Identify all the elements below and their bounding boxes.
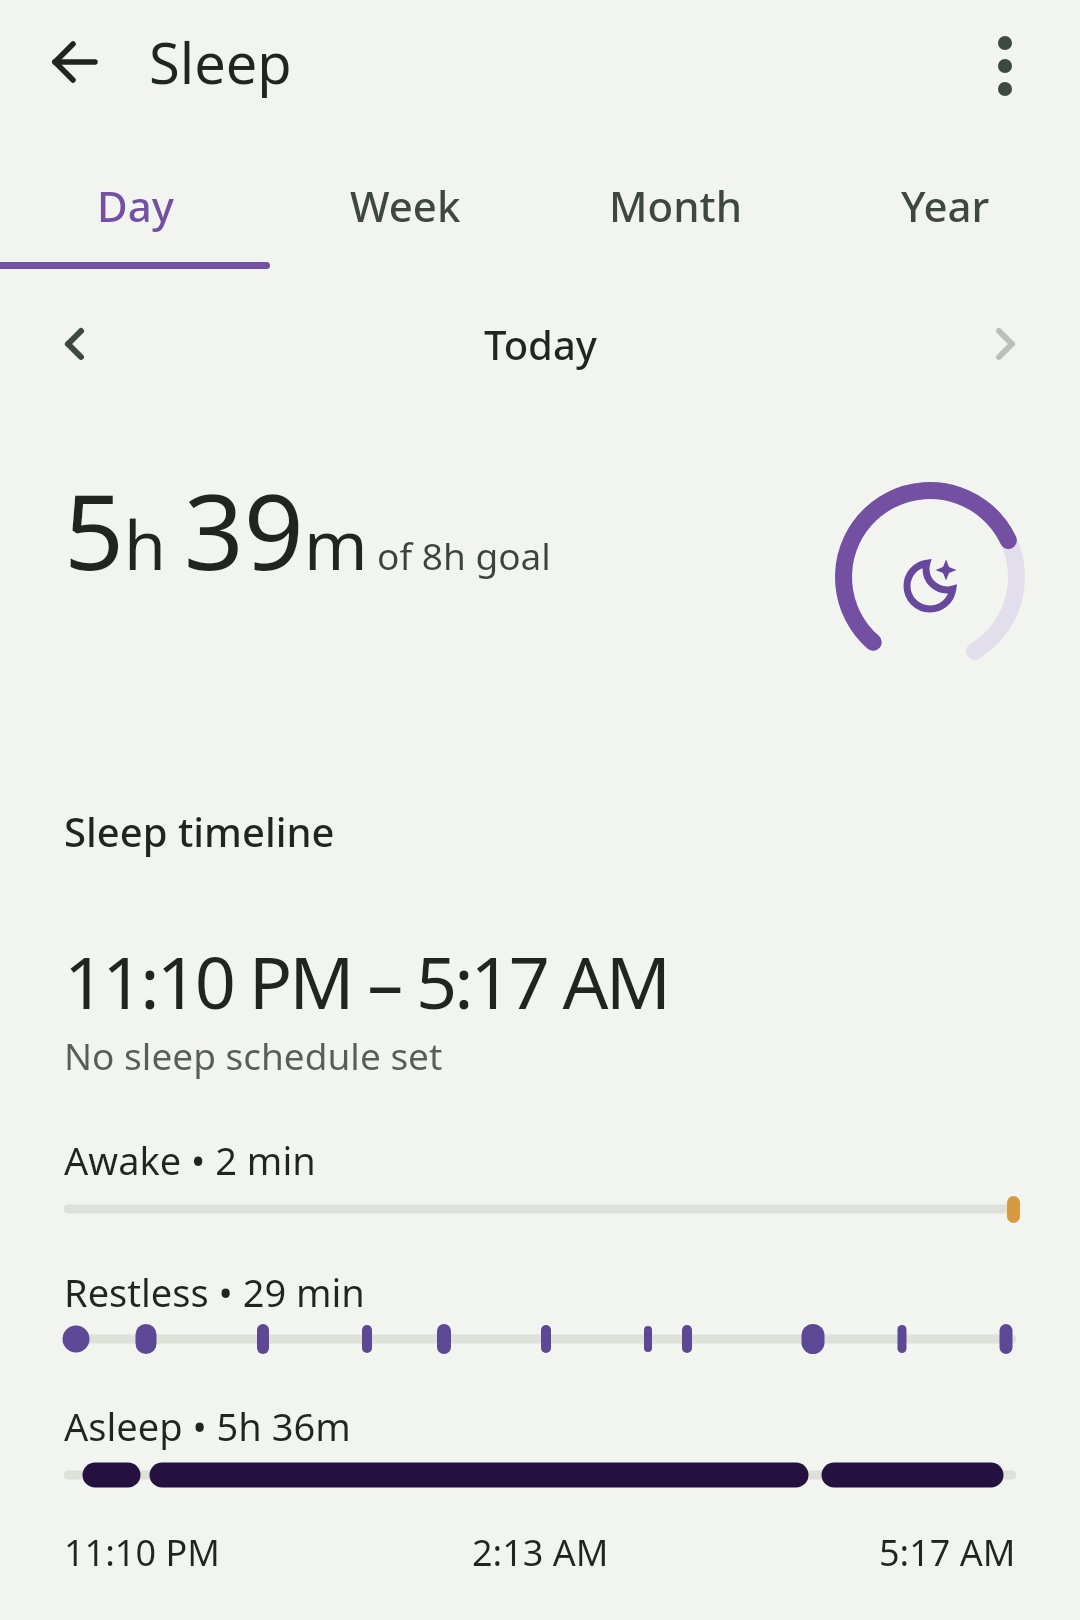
button[interactable]: Year <box>810 168 1080 243</box>
staticText: 11:10 PM <box>64 1528 220 1577</box>
staticText: Awake • 2 min <box>64 1134 316 1186</box>
staticText: Year <box>901 177 990 234</box>
staticText: 5h 39m of 8h goal <box>64 458 551 601</box>
staticText: Day <box>97 177 174 234</box>
staticText: Asleep • 5h 36m <box>64 1400 351 1452</box>
staticText: 5:17 AM <box>879 1528 1016 1577</box>
staticText: 2:13 AM <box>472 1528 609 1577</box>
staticText: Sleep timeline <box>64 804 335 858</box>
button[interactable]: Month <box>540 168 810 243</box>
staticText: Restless • 29 min <box>64 1266 365 1318</box>
staticText: 11:10 PM – 5:17 AM <box>64 932 668 1030</box>
staticText: Sleep <box>149 24 292 100</box>
staticText: No sleep schedule set <box>64 1030 443 1080</box>
button[interactable] <box>975 314 1035 374</box>
staticText: Month <box>609 177 742 234</box>
button[interactable]: Today <box>484 317 597 371</box>
button[interactable] <box>975 27 1035 87</box>
button[interactable] <box>45 314 105 374</box>
button[interactable]: Week <box>270 168 540 243</box>
staticText: Week <box>350 177 461 234</box>
button[interactable] <box>45 32 105 92</box>
button[interactable]: Day <box>0 168 270 243</box>
